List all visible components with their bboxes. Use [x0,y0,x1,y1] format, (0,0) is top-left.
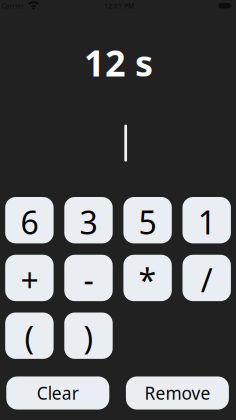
button[interactable]: 6 [5,197,54,243]
button[interactable]: Remove [126,376,229,409]
button[interactable]: * [123,255,172,301]
staticText: Carrier [1,1,24,10]
staticText: + [20,259,38,301]
staticText: ( [24,316,34,359]
staticText: 5 [139,201,157,243]
button[interactable]: 5 [123,197,172,243]
staticText: Remove [144,381,210,404]
staticText: Clear [37,381,79,404]
staticText: 6 [20,201,38,243]
staticText: * [139,259,157,301]
staticText: 12 s [84,39,153,86]
staticText: 12:01 PM [104,2,134,10]
button[interactable]: ( [5,312,54,359]
button[interactable]: - [64,255,113,301]
button[interactable]: 3 [64,197,113,243]
staticText: 1 [198,201,216,243]
staticText: 3 [79,201,97,243]
staticText: / [201,259,213,301]
staticText: ) [83,316,93,359]
button[interactable]: ) [64,312,113,359]
staticText: - [83,259,93,301]
button[interactable]: / [182,255,231,301]
button[interactable]: 1 [182,197,231,243]
button[interactable]: Clear [6,376,109,409]
button[interactable]: + [5,255,54,301]
